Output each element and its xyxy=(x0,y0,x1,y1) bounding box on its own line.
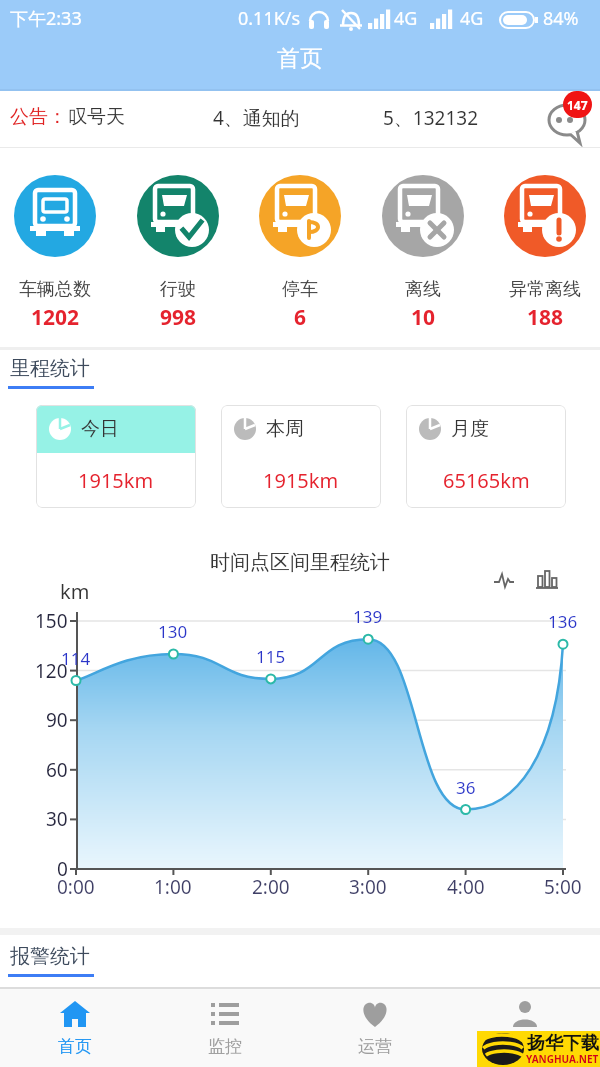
staticText: 离线 xyxy=(405,278,441,301)
button[interactable]: 车辆总数 xyxy=(0,174,115,332)
staticText: 本周 xyxy=(266,417,304,441)
staticText: 车辆总数 xyxy=(19,278,91,301)
staticText: 1:00 xyxy=(154,874,192,900)
staticText: 0 xyxy=(57,856,68,882)
staticText: 首页 xyxy=(277,44,323,73)
staticText: 月度 xyxy=(451,417,489,441)
staticText: 114 xyxy=(61,647,91,670)
staticText: 1915km xyxy=(263,467,339,494)
staticText: 6 xyxy=(294,303,307,332)
staticText: 130 xyxy=(158,620,188,643)
staticText: 4:00 xyxy=(447,874,485,900)
staticText: 5:00 xyxy=(544,874,582,900)
staticText: 90 xyxy=(46,707,68,733)
staticText: 1915km xyxy=(78,467,154,494)
staticText: 84% xyxy=(543,6,579,31)
staticText: 0:00 xyxy=(57,874,95,900)
staticText: 4G xyxy=(394,6,418,31)
staticText: 0.11K/s xyxy=(238,6,301,31)
staticText: 188 xyxy=(527,303,564,332)
staticText: 报警统计 xyxy=(10,944,90,969)
staticText: km xyxy=(60,578,90,605)
button[interactable] xyxy=(450,989,600,1067)
button[interactable]: 本周 xyxy=(221,405,381,508)
staticText: 5、132132 xyxy=(383,105,479,131)
staticText: 115 xyxy=(256,645,286,668)
button[interactable]: 今日 xyxy=(36,405,196,508)
staticText: 10 xyxy=(411,303,436,332)
staticText: 里程统计 xyxy=(10,356,90,381)
button[interactable]: 异常离线 xyxy=(485,174,600,332)
staticText: 今日 xyxy=(81,417,119,441)
button[interactable]: 公告： xyxy=(0,91,600,147)
button[interactable]: 运营 xyxy=(300,989,450,1067)
staticText: 下午2:33 xyxy=(10,6,82,31)
staticText: 监控 xyxy=(208,1036,242,1057)
staticText: 65165km xyxy=(443,467,530,494)
button[interactable]: 月度 xyxy=(406,405,566,508)
staticText: 1202 xyxy=(31,303,80,332)
button[interactable]: 离线 xyxy=(363,174,483,332)
staticText: 时间点区间里程统计 xyxy=(210,550,390,575)
staticText: 60 xyxy=(46,757,68,783)
staticText: 2:00 xyxy=(252,874,290,900)
staticText: 136 xyxy=(548,610,578,633)
button[interactable]: 首页 xyxy=(0,989,150,1067)
staticText: 36 xyxy=(456,776,476,799)
staticText: 停车 xyxy=(282,278,318,301)
staticText: 首页 xyxy=(58,1036,92,1057)
staticText: 4、通知的 xyxy=(213,105,300,131)
staticText: 3:00 xyxy=(349,874,387,900)
button[interactable]: 停车 xyxy=(240,174,360,332)
staticText: 运营 xyxy=(358,1036,392,1057)
staticText: 4G xyxy=(460,6,484,31)
staticText: 147 xyxy=(567,97,588,113)
staticText: 139 xyxy=(353,605,383,628)
staticText: 150 xyxy=(35,608,68,634)
staticText: 998 xyxy=(160,303,197,332)
staticText: 120 xyxy=(35,658,68,684)
staticText: YANGHUA.NET xyxy=(526,1052,599,1066)
staticText: 公告： xyxy=(10,105,67,129)
button[interactable]: 监控 xyxy=(150,989,300,1067)
staticText: 行驶 xyxy=(160,278,196,301)
staticText: 异常离线 xyxy=(509,278,581,301)
staticText: 30 xyxy=(46,806,68,832)
staticText: 叹号天 xyxy=(68,105,125,129)
staticText: 扬华下载 xyxy=(527,1032,599,1055)
button[interactable]: 行驶 xyxy=(118,174,238,332)
